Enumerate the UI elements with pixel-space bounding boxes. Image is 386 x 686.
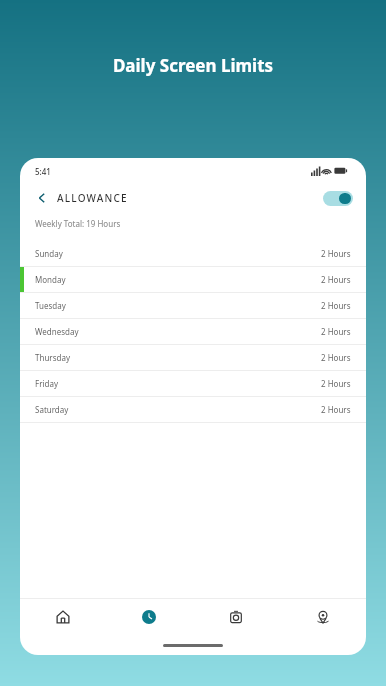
staticText: Daily Screen Limits [0,54,386,77]
button[interactable]: Saturday [20,397,366,422]
staticText: 2 Hours [321,248,351,259]
staticText: Friday [35,378,59,389]
staticText: Saturday [35,404,69,415]
staticText: 2 Hours [321,274,351,285]
button[interactable]: Friday [20,371,366,396]
button[interactable]: Home [20,599,106,635]
button[interactable]: Sunday [20,241,366,266]
staticText: Wednesday [35,326,79,337]
staticText: 2 Hours [321,378,351,389]
button[interactable]: Wednesday [20,319,366,344]
button[interactable]: Toggle allowance [323,191,353,206]
staticText: 2 Hours [321,300,351,311]
staticText: Thursday [35,352,70,363]
staticText: 5:41 [35,166,51,177]
staticText: 2 Hours [321,326,351,337]
button[interactable]: Thursday [20,345,366,370]
staticText: Monday [35,274,66,285]
staticText: 2 Hours [321,404,351,415]
button[interactable]: Monday [20,267,366,292]
button[interactable]: Back [33,189,51,207]
button[interactable]: Location [279,599,366,635]
staticText: Tuesday [35,300,66,311]
button[interactable]: Camera [192,599,279,635]
staticText: ALLOWANCE [57,191,128,205]
button[interactable]: Tuesday [20,293,366,318]
staticText: Weekly Total: 19 Hours [35,218,121,229]
staticText: Sunday [35,248,63,259]
button[interactable]: Schedule [106,599,192,635]
staticText: 2 Hours [321,352,351,363]
